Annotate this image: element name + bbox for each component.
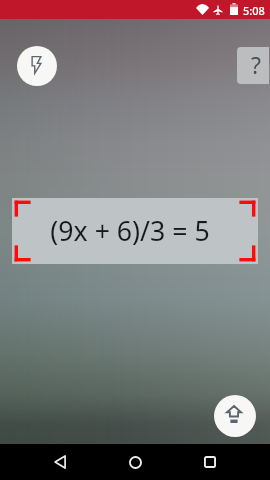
staticText: ? bbox=[251, 49, 261, 80]
button[interactable]: Toggle flash bbox=[17, 46, 57, 86]
button[interactable]: Solve bbox=[214, 395, 256, 437]
button[interactable]: Home bbox=[117, 444, 153, 480]
button[interactable]: Help bbox=[237, 47, 269, 84]
staticText: 5:08 bbox=[243, 3, 265, 18]
staticText: (9x + 6)/3 = 5 bbox=[50, 212, 210, 248]
button[interactable]: Back bbox=[42, 444, 78, 480]
button[interactable]: Recent apps bbox=[192, 444, 228, 480]
